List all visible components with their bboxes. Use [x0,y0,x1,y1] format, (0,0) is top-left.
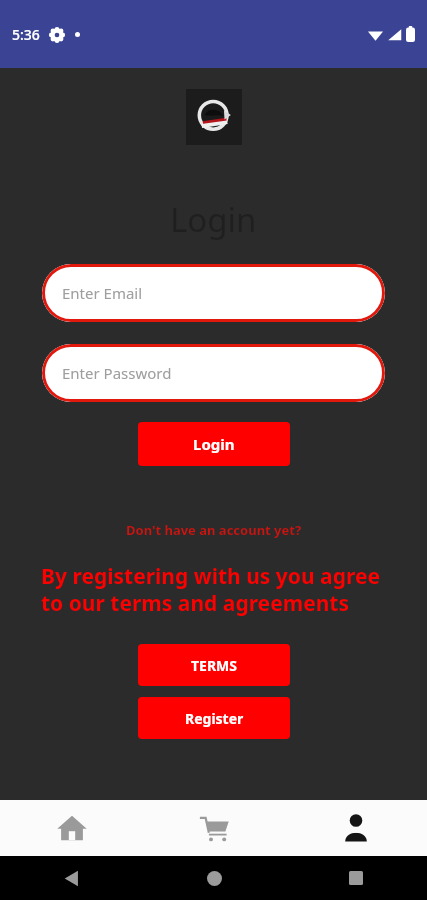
button[interactable]: TERMS [138,644,290,686]
staticText: TERMS [191,656,238,675]
button[interactable]: Register [138,697,290,739]
button[interactable]: Enter Email [42,264,385,322]
button[interactable]: Enter Password [42,344,385,402]
button[interactable]: Home [0,800,143,856]
staticText: Enter Email [62,283,143,303]
staticText: Login [170,197,257,242]
staticText: By registering with us you agree to our … [41,562,386,617]
other: App logo [186,89,242,145]
button[interactable]: Back [0,856,143,900]
button[interactable]: Login [138,422,290,466]
staticText: Login [193,434,235,454]
button[interactable]: Profile [285,800,427,856]
staticText: 5:36 [12,25,40,44]
button[interactable]: Don't have an account yet? [126,521,302,539]
button[interactable]: Recent apps [285,856,427,900]
button[interactable]: Home [143,856,285,900]
button[interactable]: Cart [143,800,285,856]
staticText: Register [185,709,244,728]
staticText: Enter Password [62,363,172,383]
